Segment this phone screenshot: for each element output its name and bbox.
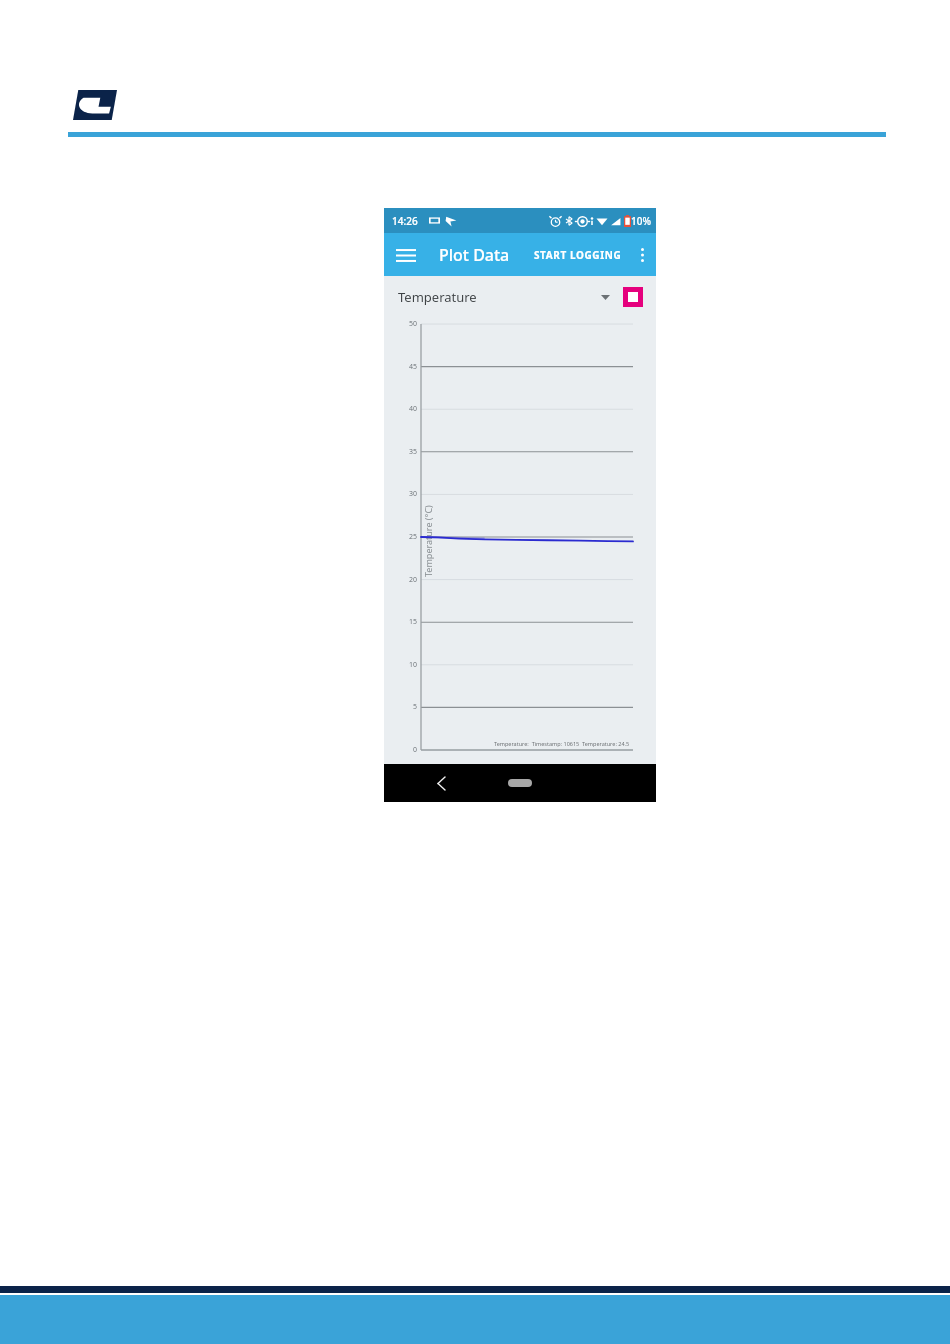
- staticText: Plot Data: [439, 244, 510, 266]
- staticText: 50: [409, 319, 418, 329]
- staticText: START LOGGING: [534, 248, 622, 262]
- staticText: 35: [409, 447, 418, 457]
- staticText: 45: [409, 362, 418, 372]
- button[interactable]: More options: [628, 241, 656, 269]
- staticText: Temperature: [398, 288, 477, 306]
- button[interactable]: Open navigation menu: [390, 239, 422, 271]
- staticText: 0: [413, 745, 418, 755]
- staticText: 5: [413, 702, 418, 712]
- staticText: 10: [409, 660, 418, 670]
- staticText: 40: [409, 404, 418, 414]
- button[interactable]: Home: [492, 772, 548, 794]
- button[interactable]: Temperature: [398, 277, 610, 317]
- staticText: Temperature (°C): [422, 505, 434, 577]
- staticText: 25: [409, 532, 418, 542]
- staticText: 10%: [631, 214, 651, 228]
- staticText: 15: [409, 617, 418, 627]
- staticText: 14:26: [392, 214, 418, 228]
- staticText: 20: [409, 575, 418, 585]
- button[interactable]: START LOGGING: [528, 240, 628, 270]
- button[interactable]: Back: [426, 768, 456, 798]
- button[interactable]: Stop logging: [623, 287, 643, 307]
- staticText: Temperature: Timestamp: 10615 Temperatur…: [494, 740, 630, 747]
- staticText: 30: [409, 489, 418, 499]
